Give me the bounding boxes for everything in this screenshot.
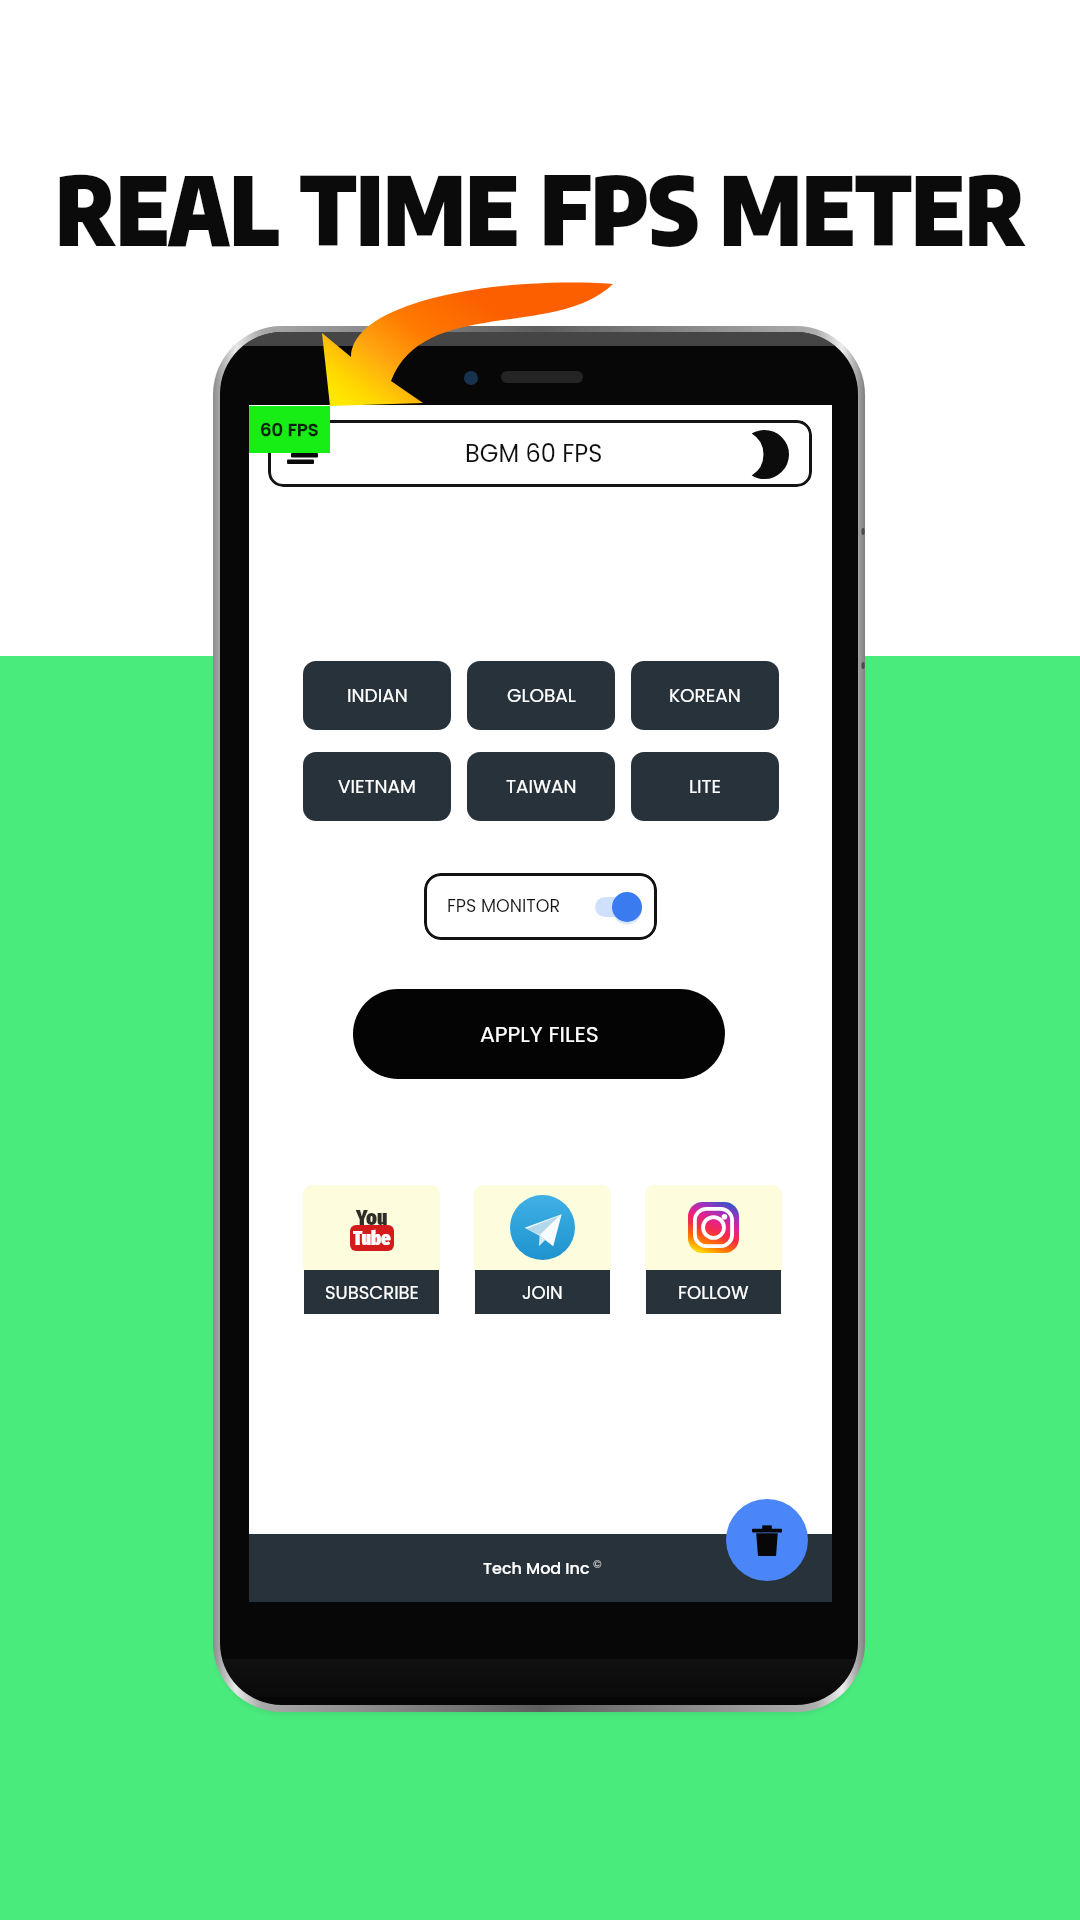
button[interactable]: VIETNAM bbox=[303, 752, 451, 821]
staticText: VIETNAM bbox=[338, 774, 416, 800]
staticText: KOREAN bbox=[669, 683, 741, 709]
staticText: BGM 60 FPS bbox=[465, 437, 603, 471]
button[interactable]: You bbox=[303, 1185, 440, 1314]
staticText: © bbox=[593, 1556, 602, 1571]
staticText: INDIAN bbox=[347, 683, 408, 709]
staticText: SUBSCRIBE bbox=[325, 1280, 419, 1305]
button[interactable]: JOIN bbox=[474, 1185, 611, 1314]
staticText: FPS MONITOR bbox=[447, 894, 561, 919]
staticText: You bbox=[356, 1204, 388, 1225]
staticText: LITE bbox=[689, 774, 722, 800]
staticText: GLOBAL bbox=[507, 683, 576, 709]
button[interactable]: BGM 60 FPS bbox=[268, 420, 812, 487]
button[interactable]: Menu bbox=[276, 432, 328, 484]
staticText: TAIWAN bbox=[506, 774, 577, 800]
button[interactable]: TAIWAN bbox=[467, 752, 615, 821]
button[interactable]: Dark mode bbox=[744, 428, 796, 480]
button[interactable]: LITE bbox=[631, 752, 779, 821]
staticText: FOLLOW bbox=[678, 1280, 749, 1305]
button[interactable]: KOREAN bbox=[631, 661, 779, 730]
staticText: 60 FPS bbox=[260, 417, 319, 442]
button[interactable]: Delete bbox=[726, 1499, 808, 1581]
button[interactable]: INDIAN bbox=[303, 661, 451, 730]
button[interactable]: APPLY FILES bbox=[353, 989, 725, 1079]
button[interactable]: FPS MONITOR bbox=[424, 873, 657, 940]
staticText: Tube bbox=[353, 1226, 391, 1250]
staticText: Tech Mod Inc bbox=[483, 1557, 590, 1579]
staticText: JOIN bbox=[522, 1280, 563, 1305]
button[interactable]: FOLLOW bbox=[645, 1185, 782, 1314]
button[interactable]: GLOBAL bbox=[467, 661, 615, 730]
staticText: APPLY FILES bbox=[480, 1019, 599, 1050]
staticText: REAL TIME FPS METER bbox=[55, 148, 1026, 267]
